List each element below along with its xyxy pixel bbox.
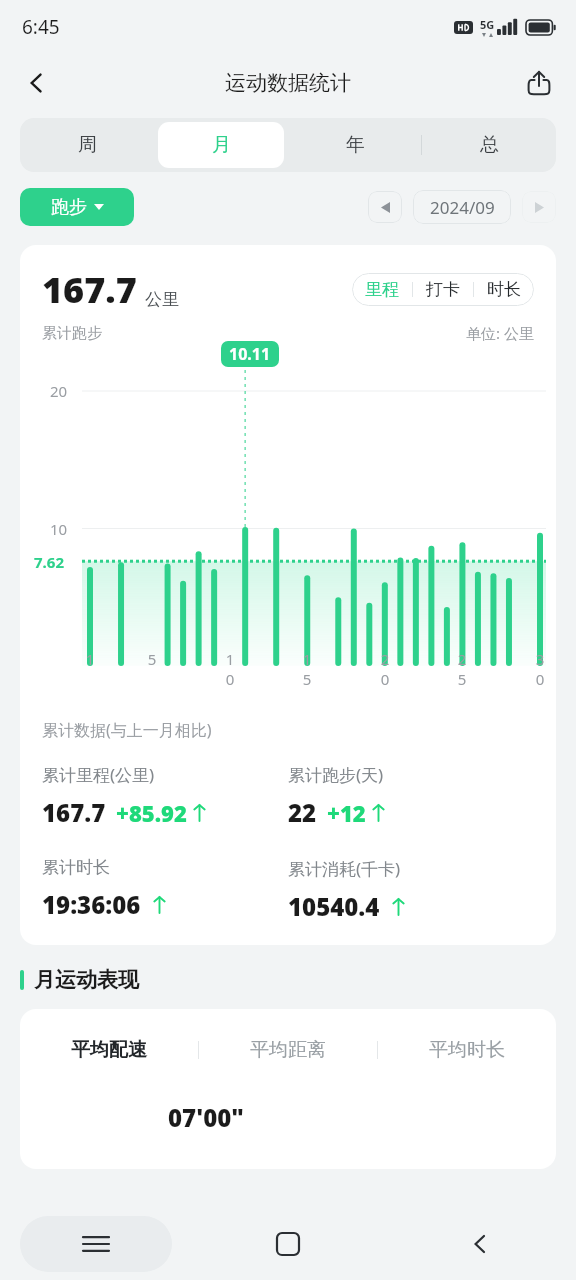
staticText: 累计数据(与上一月相比) <box>42 719 212 741</box>
button[interactable]: 平均时长 <box>378 1035 556 1065</box>
staticText: +12 <box>327 798 366 828</box>
staticText: 10.11 <box>229 343 271 365</box>
staticText: 30 <box>532 649 548 689</box>
staticText: 累计跑步(天) <box>288 763 384 786</box>
button[interactable]: 平均距离 <box>199 1035 377 1065</box>
staticText: 周 <box>78 133 97 157</box>
staticText: +85.92 <box>116 798 187 828</box>
staticText: 167.7 <box>42 265 137 314</box>
staticText: 1 <box>82 649 98 669</box>
staticText: 25 <box>454 649 470 689</box>
staticText: 5 <box>144 649 160 669</box>
button[interactable]: 年 <box>292 122 418 168</box>
button[interactable]: Back <box>384 1208 576 1280</box>
staticText: 累计消耗(千卡) <box>288 857 401 880</box>
button[interactable]: Next month <box>522 191 556 223</box>
staticText: 167.7 <box>42 796 106 829</box>
button[interactable]: 周 <box>24 122 150 168</box>
staticText: 平均距离 <box>250 1038 326 1062</box>
staticText: 10 <box>50 519 68 539</box>
button[interactable]: 总 <box>426 122 552 168</box>
staticText: 累计跑步 <box>42 324 102 343</box>
staticText: 6:45 <box>22 14 60 40</box>
staticText: 公里 <box>145 289 179 310</box>
staticText: 20 <box>377 649 393 689</box>
staticText: 5G <box>480 17 495 32</box>
staticText: 平均配速 <box>71 1038 147 1062</box>
staticText: 月 <box>212 133 231 157</box>
staticText: 7.62 <box>34 552 64 572</box>
staticText: 总 <box>480 133 499 157</box>
staticText: 跑步 <box>51 196 87 219</box>
button[interactable]: 时长 <box>474 273 534 306</box>
button[interactable]: 平均配速 <box>20 1035 198 1065</box>
button[interactable]: Home <box>192 1208 384 1280</box>
button[interactable]: 打卡 <box>413 273 473 306</box>
staticText: 年 <box>346 133 365 157</box>
staticText: 2024/09 <box>430 196 495 219</box>
button[interactable]: Previous month <box>368 191 402 223</box>
staticText: 月运动表现 <box>34 967 139 993</box>
button[interactable]: 2024/09 <box>413 190 511 224</box>
staticText: 19:36:06 <box>42 888 141 921</box>
staticText: 15 <box>299 649 315 689</box>
staticText: 07'00" <box>168 1101 244 1134</box>
staticText: 平均时长 <box>429 1038 505 1062</box>
staticText: 10540.4 <box>288 890 380 923</box>
staticText: 时长 <box>487 279 521 300</box>
staticText: 运动数据统计 <box>225 70 351 96</box>
staticText: 打卡 <box>426 279 460 300</box>
staticText: 20 <box>50 381 68 401</box>
button[interactable]: 跑步 <box>20 188 134 226</box>
staticText: 里程 <box>365 279 399 300</box>
staticText: 累计时长 <box>42 857 110 878</box>
button[interactable]: Recent apps <box>20 1216 172 1272</box>
staticText: 10 <box>222 649 238 689</box>
staticText: 单位: 公里 <box>466 323 534 343</box>
button[interactable]: Back <box>10 56 64 110</box>
staticText: 22 <box>288 796 317 829</box>
button[interactable]: 月 <box>158 122 284 168</box>
button[interactable]: Share <box>514 58 564 108</box>
button[interactable]: 里程 <box>352 273 412 306</box>
staticText: 累计里程(公里) <box>42 763 155 786</box>
